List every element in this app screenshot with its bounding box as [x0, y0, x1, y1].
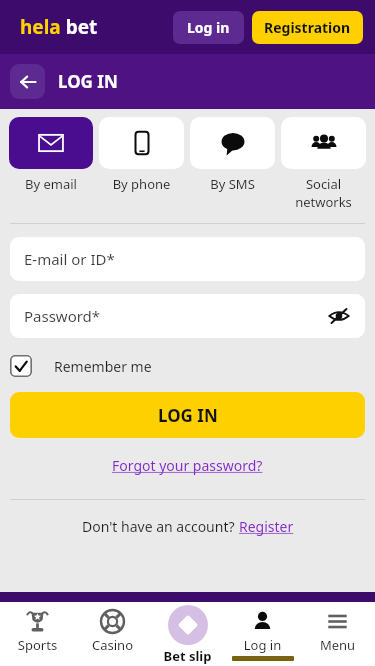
staticText: Log in [225, 636, 300, 654]
button[interactable]: LOG IN [10, 392, 365, 438]
button[interactable]: Show password [325, 302, 353, 330]
staticText: Don't have an account? [82, 517, 239, 536]
button[interactable]: Registration [252, 11, 363, 44]
button[interactable]: By phone [99, 117, 184, 193]
staticText: Registration [264, 18, 351, 37]
button[interactable]: Sports [0, 602, 75, 666]
button[interactable]: Back [10, 64, 45, 99]
staticText: hela bet [20, 14, 98, 40]
staticText: By phone [99, 175, 184, 193]
button[interactable]: Forgot your password? [106, 454, 269, 477]
staticText: Password* [24, 306, 101, 326]
button[interactable]: Remember me [10, 355, 365, 377]
button[interactable]: Register [239, 517, 294, 536]
button[interactable]: Bet slip [150, 602, 225, 666]
button[interactable]: Social networks [281, 117, 366, 211]
staticText: Forgot your password? [112, 456, 263, 475]
staticText: By SMS [190, 175, 275, 193]
staticText: Bet slip [150, 647, 225, 665]
staticText: LOG IN [158, 404, 218, 427]
staticText: Casino [75, 636, 150, 654]
staticText: By email [9, 175, 93, 193]
staticText: Log in [187, 18, 230, 37]
staticText: Remember me [54, 357, 152, 376]
button[interactable]: Password* [10, 294, 365, 338]
staticText: Register [239, 517, 294, 536]
button[interactable]: Log in [173, 11, 244, 44]
button[interactable]: By email [9, 117, 93, 193]
button[interactable]: Casino [75, 602, 150, 666]
staticText: LOG IN [58, 70, 118, 93]
button[interactable]: Menu [300, 602, 375, 666]
button[interactable]: Log in [225, 602, 300, 666]
staticText: Menu [300, 636, 375, 654]
staticText: E-mail or ID* [24, 249, 115, 269]
button[interactable]: By SMS [190, 117, 275, 193]
staticText: Sports [0, 636, 75, 654]
button[interactable]: E-mail or ID* [10, 237, 365, 281]
staticText: Social networks [281, 175, 366, 211]
